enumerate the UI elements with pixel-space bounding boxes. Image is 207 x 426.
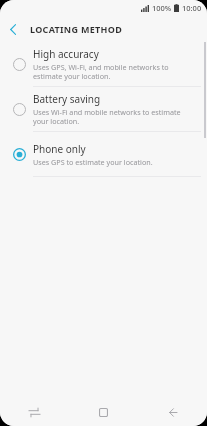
- button[interactable]: Navigate up: [0, 16, 26, 42]
- staticText: 10:00: [182, 3, 202, 13]
- staticText: Uses GPS to estimate your location.: [33, 157, 153, 167]
- button[interactable]: High accuracy: [0, 42, 207, 86]
- staticText: Uses GPS, Wi-Fi, and mobile networks to …: [33, 62, 197, 81]
- staticText: High accuracy: [33, 47, 99, 61]
- button[interactable]: Home: [69, 398, 138, 426]
- staticText: Phone only: [33, 142, 86, 156]
- staticText: Battery saving: [33, 92, 101, 106]
- staticText: LOCATING METHOD: [30, 23, 123, 35]
- staticText: 100%: [152, 3, 172, 13]
- staticText: Uses Wi-Fi and mobile networks to estima…: [33, 107, 197, 126]
- button[interactable]: Recent apps: [0, 398, 69, 426]
- button[interactable]: Phone only: [0, 132, 207, 176]
- button[interactable]: Battery saving: [0, 87, 207, 131]
- button[interactable]: Back: [138, 398, 207, 426]
